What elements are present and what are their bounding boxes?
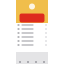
button[interactable]: Tab: [24, 60, 32, 64]
button[interactable]: [16, 35, 48, 39]
button[interactable]: [16, 43, 48, 47]
button[interactable]: [16, 23, 48, 27]
button[interactable]: [16, 39, 48, 43]
button[interactable]: Tab: [16, 60, 24, 64]
button[interactable]: Tab: [40, 60, 48, 64]
button[interactable]: [16, 27, 48, 31]
button[interactable]: [16, 31, 48, 35]
button[interactable]: Tab: [32, 60, 40, 64]
